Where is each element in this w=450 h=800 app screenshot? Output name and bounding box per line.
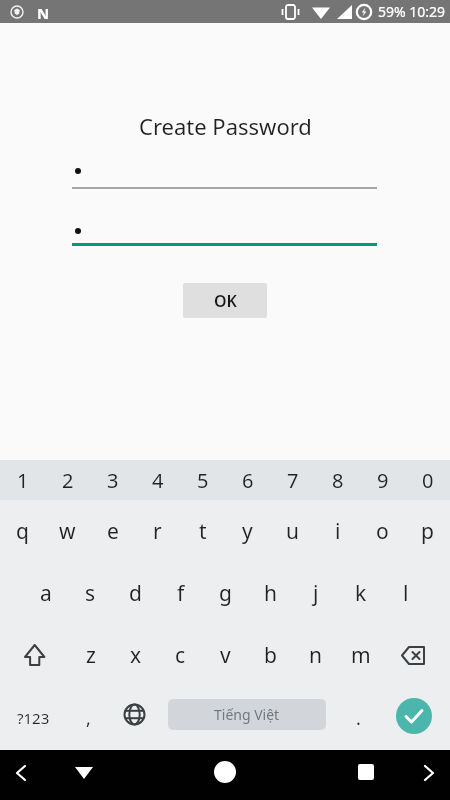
button[interactable]: Tiếng Việt [168,699,326,730]
button[interactable] [50,750,110,800]
button[interactable]: 8 [315,460,360,500]
button[interactable]: l [383,562,428,624]
staticText: u [286,517,299,546]
staticText: s [85,579,96,608]
button[interactable]: 4 [135,460,180,500]
staticText: x [130,641,142,670]
button[interactable]: h [248,562,293,624]
staticText: N [37,3,50,23]
button[interactable]: a [23,562,68,624]
button[interactable]: . [336,686,381,750]
button[interactable]: 3 [90,460,135,500]
staticText: i [335,517,341,546]
button[interactable]: OK [183,283,267,318]
staticText: . [356,706,361,731]
staticText: n [309,641,322,670]
button[interactable]: o [360,500,405,562]
staticText: OK [214,290,237,312]
button[interactable]: 1 [0,460,45,500]
staticText: 6 [242,467,254,494]
staticText: v [220,641,231,670]
button[interactable]: j [293,562,338,624]
button[interactable]: i [315,500,360,562]
staticText: m [351,641,371,670]
button[interactable] [382,624,450,686]
button[interactable]: 9 [360,460,405,500]
staticText: z [86,641,96,670]
button[interactable]: r [135,500,180,562]
button[interactable] [400,750,450,800]
staticText: q [16,517,29,546]
staticText: Create Password [139,111,312,141]
button[interactable]: , [66,686,111,750]
staticText: 4 [152,467,164,494]
button[interactable]: n [293,624,338,686]
button[interactable]: z [68,624,113,686]
button[interactable]: w [45,500,90,562]
staticText: 3 [107,467,119,494]
button[interactable] [110,750,340,800]
button[interactable]: s [68,562,113,624]
button[interactable]: x [113,624,158,686]
staticText: 2 [62,467,74,494]
button[interactable]: 2 [45,460,90,500]
button[interactable]: 5 [180,460,225,500]
staticText: 7 [287,467,299,494]
staticText: , [86,706,91,731]
staticText: w [59,517,76,546]
staticText: a [40,579,52,608]
button[interactable]: d [113,562,158,624]
button[interactable]: 0 [405,460,450,500]
button[interactable] [111,686,156,750]
button[interactable]: f [158,562,203,624]
staticText: 8 [332,467,344,494]
staticText: h [264,579,277,608]
staticText: j [313,579,319,608]
button[interactable]: t [180,500,225,562]
staticText: ?123 [17,708,50,728]
button[interactable]: g [203,562,248,624]
button[interactable] [340,750,400,800]
staticText: g [219,579,232,608]
staticText: l [403,579,409,608]
staticText: k [355,579,367,608]
button[interactable]: v [203,624,248,686]
button[interactable]: m [338,624,383,686]
staticText: b [264,641,277,670]
staticText: p [421,517,434,546]
button[interactable]: q [0,500,45,562]
staticText: d [129,579,142,608]
button[interactable]: y [225,500,270,562]
staticText: f [177,579,185,608]
button[interactable]: p [405,500,450,562]
staticText: t [199,517,207,546]
staticText: 9 [377,467,389,494]
button[interactable]: k [338,562,383,624]
button[interactable]: u [270,500,315,562]
button[interactable]: e [90,500,135,562]
staticText: 1 [17,467,29,494]
staticText: e [107,517,119,546]
button[interactable]: 6 [225,460,270,500]
staticText: 5 [197,467,209,494]
staticText: Tiếng Việt [214,705,280,724]
button[interactable]: b [248,624,293,686]
button[interactable] [0,624,67,686]
button[interactable]: ?123 [0,686,66,750]
staticText: r [153,517,162,546]
button[interactable] [396,698,432,734]
staticText: 59% 10:29 [378,2,446,21]
staticText: y [242,517,253,546]
staticText: c [175,641,186,670]
button[interactable] [0,750,50,800]
button[interactable]: c [158,624,203,686]
button[interactable]: 7 [270,460,315,500]
staticText: o [376,517,389,546]
staticText: 0 [422,467,434,494]
